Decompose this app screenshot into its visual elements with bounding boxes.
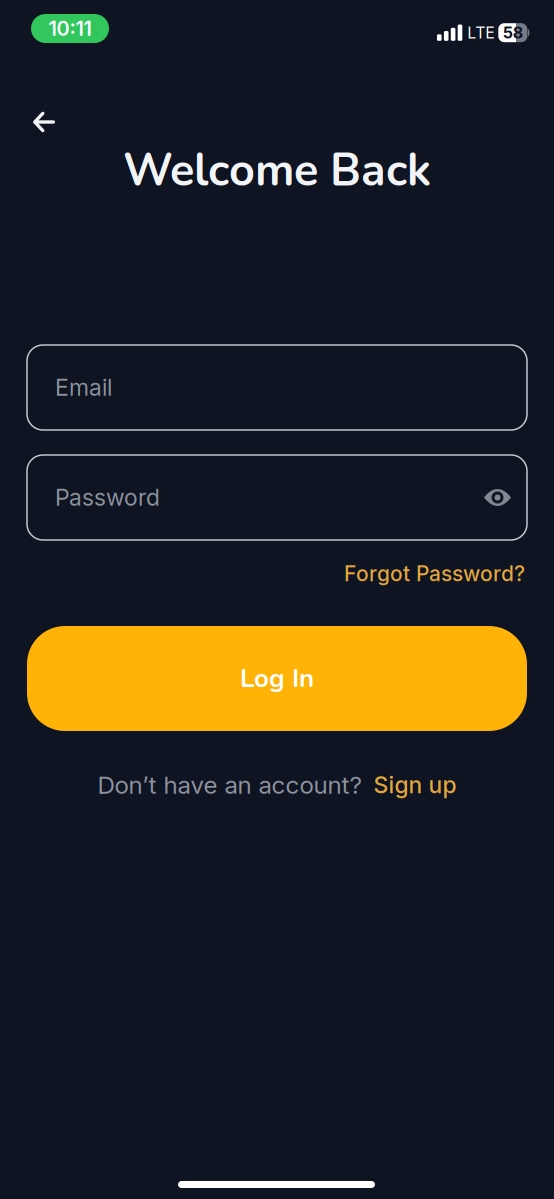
staticText: LTE — [467, 23, 495, 42]
staticText: Log In — [240, 661, 314, 696]
button[interactable]: Forgot Password? — [344, 561, 554, 586]
staticText: Sign up — [373, 771, 456, 799]
button[interactable]: Show password — [484, 478, 527, 516]
staticText: Email — [55, 374, 112, 401]
staticText: Forgot Password? — [344, 561, 525, 586]
staticText: Don’t have an account? — [97, 770, 362, 799]
staticText: 58 — [503, 23, 523, 42]
button[interactable]: Sign up — [373, 771, 456, 799]
staticText: Welcome Back — [123, 140, 431, 201]
staticText: Password — [55, 484, 160, 511]
staticText: 10:11 — [48, 16, 91, 41]
button[interactable]: Back — [27, 106, 61, 138]
button[interactable]: Log In — [27, 626, 527, 731]
